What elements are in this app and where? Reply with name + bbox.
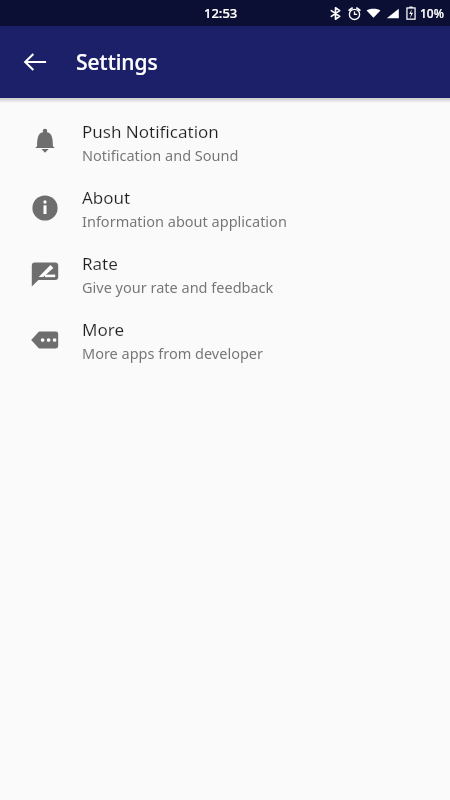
staticText: Rate xyxy=(82,252,118,275)
button[interactable]: Rate xyxy=(0,241,450,307)
staticText: 10% xyxy=(420,5,444,21)
staticText: Settings xyxy=(76,48,158,77)
button[interactable]: Back xyxy=(14,41,56,83)
staticText: More xyxy=(82,318,124,341)
staticText: Push Notification xyxy=(82,120,219,143)
button[interactable]: Push Notification xyxy=(0,109,450,175)
staticText: 12:53 xyxy=(204,4,238,22)
staticText: Notification and Sound xyxy=(82,145,239,165)
button[interactable]: More xyxy=(0,307,450,373)
staticText: Give your rate and feedback xyxy=(82,277,274,297)
staticText: More apps from developer xyxy=(82,343,263,363)
staticText: Information about application xyxy=(82,211,287,231)
button[interactable]: About xyxy=(0,175,450,241)
staticText: About xyxy=(82,186,131,209)
